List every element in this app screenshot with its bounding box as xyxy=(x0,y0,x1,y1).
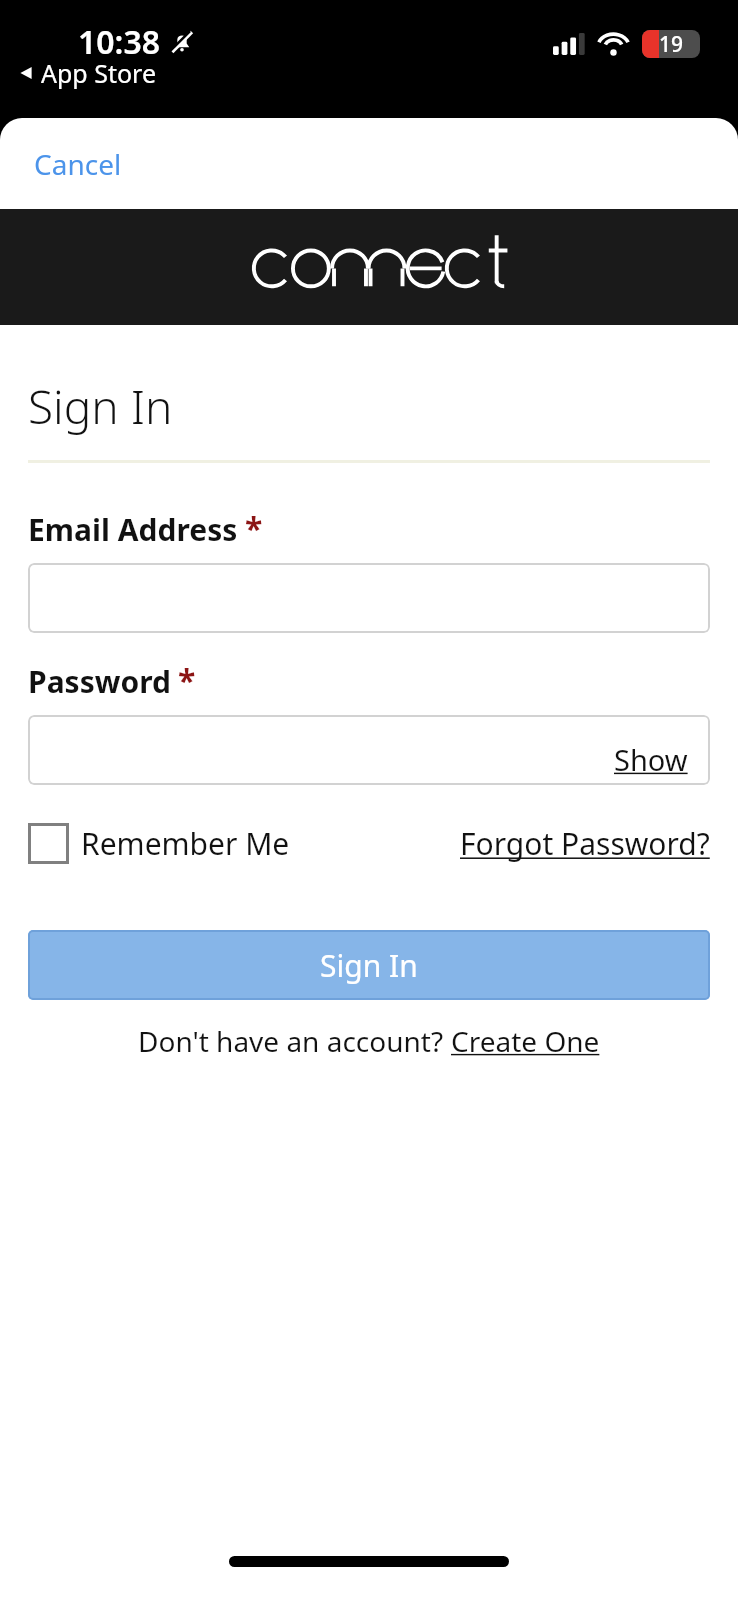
staticText: Sign In xyxy=(320,945,418,986)
staticText: Show xyxy=(614,740,688,779)
button[interactable]: Show xyxy=(28,715,710,785)
button[interactable]: Back to App Store xyxy=(18,56,157,90)
staticText: App Store xyxy=(41,56,157,90)
button[interactable]: Sign In xyxy=(28,930,710,1000)
staticText: Sign In xyxy=(28,375,173,438)
staticText: 19 xyxy=(659,30,684,58)
staticText: * xyxy=(178,659,196,703)
staticText: Forgot Password? xyxy=(460,823,710,864)
staticText: * xyxy=(245,507,263,551)
button[interactable]: Show xyxy=(614,740,710,785)
staticText: Cancel xyxy=(34,145,122,183)
staticText: Remember Me xyxy=(81,823,290,864)
staticText: Password xyxy=(28,661,171,702)
button[interactable]: Cancel xyxy=(22,137,134,191)
staticText: 10:38 xyxy=(78,20,161,64)
staticText: Email Address xyxy=(28,509,238,550)
button[interactable] xyxy=(28,563,710,633)
staticText: Create One xyxy=(451,1022,600,1060)
button[interactable]: Forgot Password? xyxy=(460,819,710,868)
staticText: Don't have an account? xyxy=(138,1022,451,1060)
button[interactable]: Remember Me xyxy=(28,819,290,868)
button[interactable]: Create One xyxy=(451,1022,600,1060)
